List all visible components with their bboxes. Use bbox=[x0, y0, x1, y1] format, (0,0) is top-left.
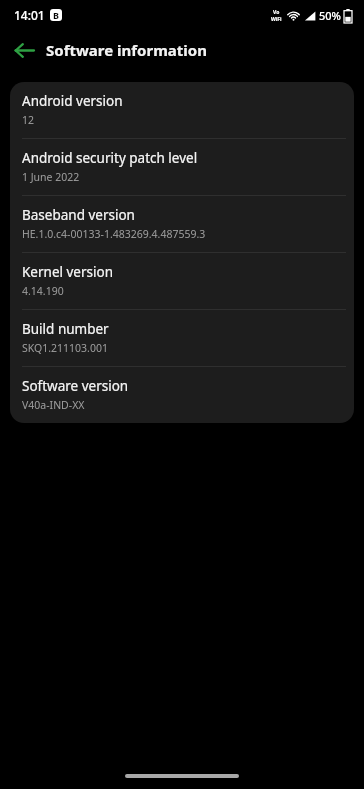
staticText: WiFi bbox=[271, 16, 282, 23]
staticText: 12 bbox=[22, 113, 35, 127]
staticText: 4.14.190 bbox=[22, 284, 64, 298]
staticText: HE.1.0.c4-00133-1.483269.4.487559.3 bbox=[22, 227, 206, 241]
staticText: 14:01 bbox=[14, 7, 45, 23]
button[interactable]: Baseband version bbox=[10, 196, 354, 252]
button[interactable]: Android version bbox=[10, 82, 354, 138]
staticText: 50% bbox=[319, 8, 341, 23]
staticText: Build number bbox=[22, 320, 109, 338]
button[interactable]: Kernel version bbox=[10, 253, 354, 309]
staticText: Android version bbox=[22, 92, 123, 110]
button[interactable]: Back bbox=[8, 34, 40, 66]
staticText: 1 June 2022 bbox=[22, 170, 80, 184]
staticText: Vo bbox=[273, 9, 280, 16]
staticText: B bbox=[53, 9, 59, 21]
button[interactable]: Build number bbox=[10, 310, 354, 366]
button[interactable]: Android security patch level bbox=[10, 139, 354, 195]
staticText: Software information bbox=[46, 40, 207, 60]
staticText: Baseband version bbox=[22, 206, 135, 224]
staticText: Software version bbox=[22, 377, 129, 395]
staticText: Kernel version bbox=[22, 263, 114, 281]
staticText: Android security patch level bbox=[22, 149, 198, 167]
staticText: V40a-IND-XX bbox=[22, 398, 85, 412]
button[interactable]: Software version bbox=[10, 367, 354, 423]
staticText: SKQ1.211103.001 bbox=[22, 341, 108, 355]
